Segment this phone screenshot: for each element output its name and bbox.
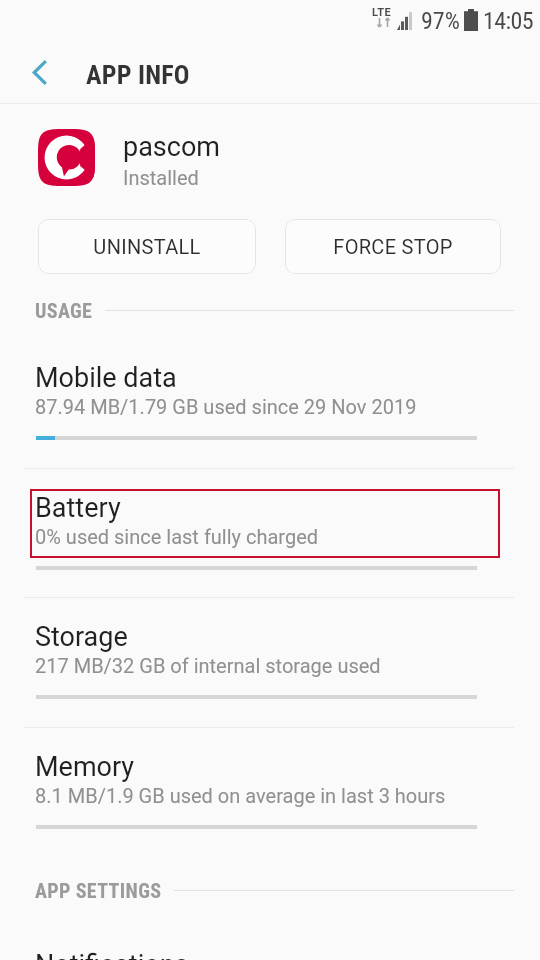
staticText: 87.94 MB/1.79 GB used since 29 Nov 2019 (35, 395, 417, 418)
button[interactable]: Navigate up (17, 49, 63, 95)
staticText: 8.1 MB/1.9 GB used on average in last 3 … (35, 784, 446, 807)
staticText: APP SETTINGS (35, 879, 162, 902)
button[interactable]: UNINSTALL (38, 219, 256, 274)
staticText: Memory (35, 751, 135, 783)
staticText: Mobile data (35, 362, 177, 394)
staticText: Installed (123, 166, 199, 189)
staticText: 217 MB/32 GB of internal storage used (35, 654, 381, 677)
button[interactable]: FORCE STOP (285, 219, 501, 274)
staticText: UNINSTALL (93, 235, 201, 258)
staticText: USAGE (35, 299, 93, 322)
button[interactable] (30, 618, 500, 687)
staticText: pascom (123, 131, 220, 163)
staticText: Battery (35, 492, 121, 524)
staticText: 0% used since last fully charged (35, 525, 319, 548)
staticText: 97% (421, 7, 460, 35)
staticText: 14:05 (483, 7, 533, 35)
button[interactable] (30, 489, 500, 558)
staticText: Storage (35, 621, 128, 653)
staticText: APP INFO (86, 60, 190, 90)
staticText: FORCE STOP (333, 235, 453, 258)
button[interactable] (30, 359, 500, 428)
staticText: LTE (372, 6, 392, 19)
staticText: Notifications (35, 949, 189, 960)
button[interactable] (30, 748, 500, 817)
